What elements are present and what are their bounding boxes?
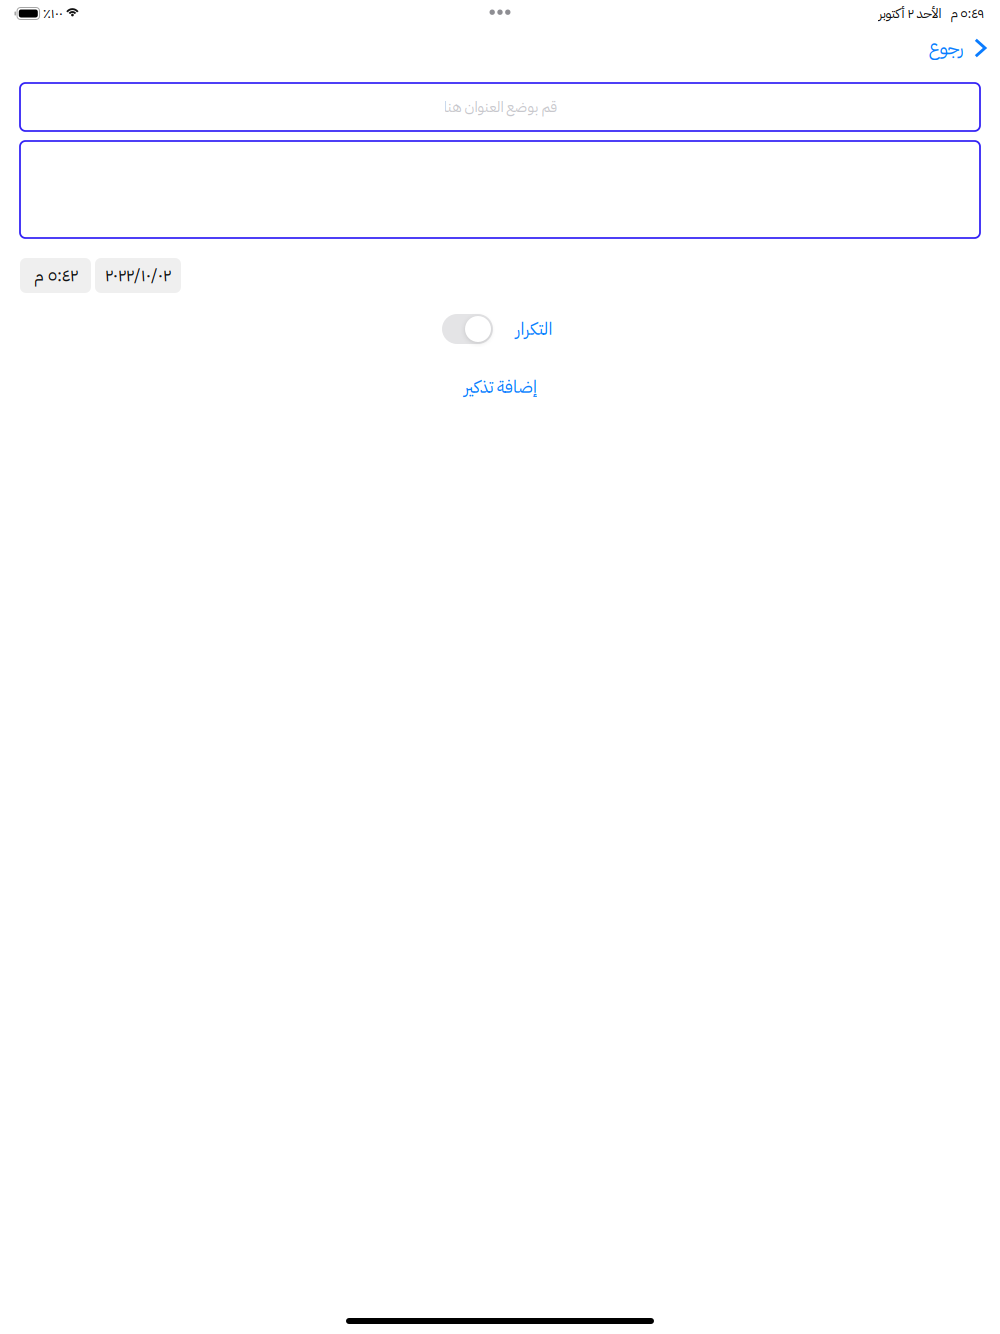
- staticText: ٥:٤٢ م: [33, 262, 77, 288]
- staticText: قم بوضع العنوان هنا: [443, 96, 557, 118]
- button[interactable]: قم بوضع العنوان هنا: [20, 83, 980, 131]
- button[interactable]: ٥:٤٢ م: [20, 258, 91, 293]
- staticText: رجوع: [928, 34, 963, 62]
- button[interactable]: إضافة تذكير: [447, 366, 552, 408]
- button[interactable]: رجوع: [915, 25, 1000, 71]
- staticText: ٪١٠٠: [43, 3, 63, 23]
- staticText: إضافة تذكير: [463, 374, 536, 400]
- button[interactable]: ٢٠٢٢/١٠/٠٢: [95, 258, 181, 293]
- staticText: التكرار: [515, 316, 552, 342]
- staticText: ٢٠٢٢/١٠/٠٢: [105, 262, 171, 288]
- button[interactable]: التكرار: [442, 314, 552, 344]
- button[interactable]: الملاحظات: [20, 141, 980, 238]
- staticText: ٥:٤٩ م الأحد ٢ أكتوبر: [878, 3, 984, 23]
